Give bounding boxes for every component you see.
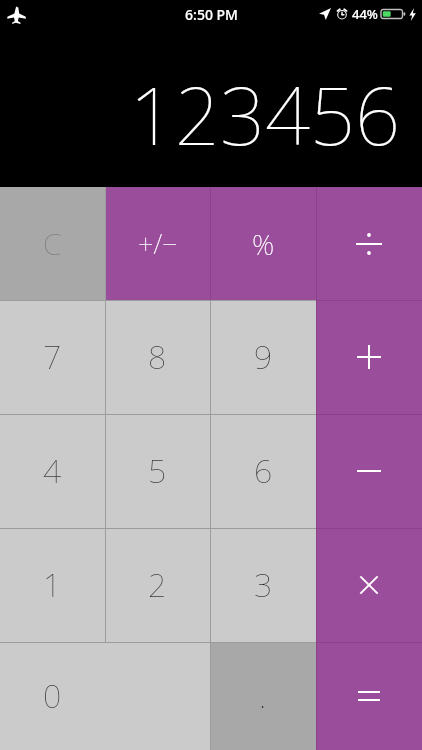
button[interactable]: %: [210, 187, 316, 300]
button[interactable]: Plus: [316, 300, 422, 414]
button[interactable]: 0: [0, 642, 210, 750]
staticText: 6:50 PM: [185, 5, 238, 24]
button[interactable]: 4: [0, 414, 105, 528]
button[interactable]: 9: [210, 300, 316, 414]
staticText: 9: [254, 335, 273, 379]
button[interactable]: 6: [210, 414, 316, 528]
staticText: 8: [148, 335, 167, 379]
button[interactable]: 3: [210, 528, 316, 642]
staticText: 3: [254, 563, 273, 607]
button[interactable]: Multiply: [316, 528, 422, 642]
staticText: C: [43, 223, 62, 264]
staticText: 6: [254, 449, 273, 493]
staticText: 123456: [129, 61, 400, 169]
staticText: 4: [43, 449, 62, 493]
staticText: 5: [148, 449, 167, 493]
staticText: 44%: [352, 5, 378, 23]
button[interactable]: 1: [0, 528, 105, 642]
button[interactable]: 5: [105, 414, 210, 528]
button[interactable]: Equals: [316, 642, 422, 750]
staticText: .: [259, 674, 267, 718]
staticText: 1: [43, 563, 62, 607]
staticText: 0: [43, 674, 62, 718]
staticText: %: [252, 225, 275, 263]
staticText: 7: [43, 335, 62, 379]
button[interactable]: +/−: [105, 187, 210, 300]
button[interactable]: Divide: [316, 187, 422, 300]
button[interactable]: 2: [105, 528, 210, 642]
button[interactable]: Minus: [316, 414, 422, 528]
button[interactable]: 7: [0, 300, 105, 414]
staticText: +/−: [138, 225, 178, 262]
staticText: 2: [148, 563, 167, 607]
button[interactable]: 8: [105, 300, 210, 414]
